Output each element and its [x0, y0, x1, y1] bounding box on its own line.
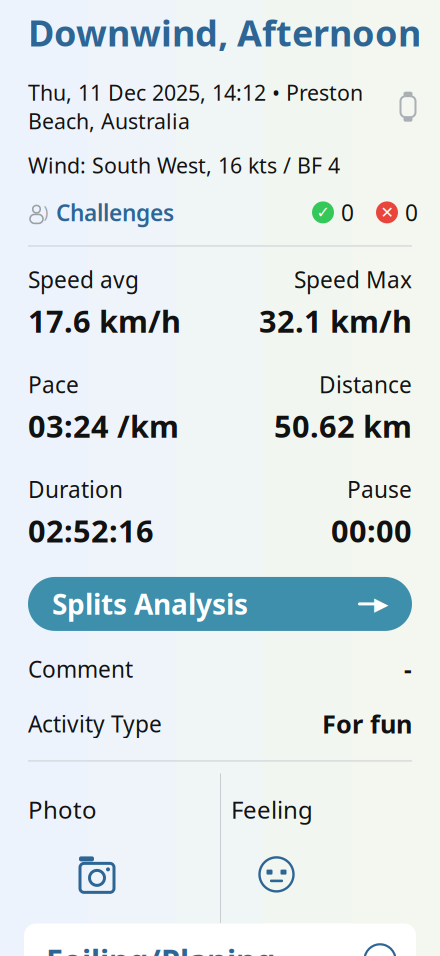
staticText: Splits Analysis [52, 585, 248, 622]
button[interactable]: Foiling options [360, 940, 400, 956]
button[interactable]: Activity Type [0, 689, 440, 744]
staticText: Thu, 11 Dec 2025, 14:12 • Preston Beach,… [28, 78, 363, 135]
staticText: 32.1 km/h [259, 301, 412, 341]
staticText: Comment [28, 654, 133, 684]
staticText: 50.62 km [274, 405, 412, 446]
staticText: 17.6 km/h [28, 301, 181, 341]
staticText: 03:24 /km [28, 405, 179, 446]
staticText: ▶ [374, 593, 388, 614]
staticText: Challenges [56, 197, 174, 227]
button[interactable]: ) [0, 179, 440, 231]
staticText: For fun [322, 707, 412, 740]
staticText: Activity Type [28, 709, 162, 739]
button[interactable]: Add photo [0, 773, 220, 923]
staticText: ✓ [316, 203, 329, 221]
staticText: Downwind, Afternoon [28, 9, 421, 56]
staticText: Feeling [231, 793, 313, 825]
staticText: Duration [28, 474, 123, 504]
staticText: 00:00 [331, 510, 412, 551]
staticText: ) [43, 201, 48, 223]
staticText: 02:52:16 [28, 510, 154, 551]
staticText: ✕ [380, 203, 393, 221]
staticText: 0 [341, 197, 354, 227]
staticText: Speed Max [294, 264, 412, 295]
button[interactable]: Comment [0, 631, 440, 689]
staticText: Foiling/Planing [46, 939, 275, 956]
staticText: Distance [319, 369, 412, 399]
staticText: Photo [28, 793, 97, 825]
staticText: Wind: South West, 16 kts / BF 4 [28, 151, 340, 179]
staticText: Pause [347, 474, 412, 504]
button[interactable]: Set feeling [221, 773, 440, 923]
staticText: Speed avg [28, 264, 139, 295]
staticText: 0 [405, 197, 418, 227]
staticText: Pace [28, 369, 79, 399]
button[interactable]: Splits Analysis [28, 577, 412, 631]
staticText: - [404, 653, 412, 685]
